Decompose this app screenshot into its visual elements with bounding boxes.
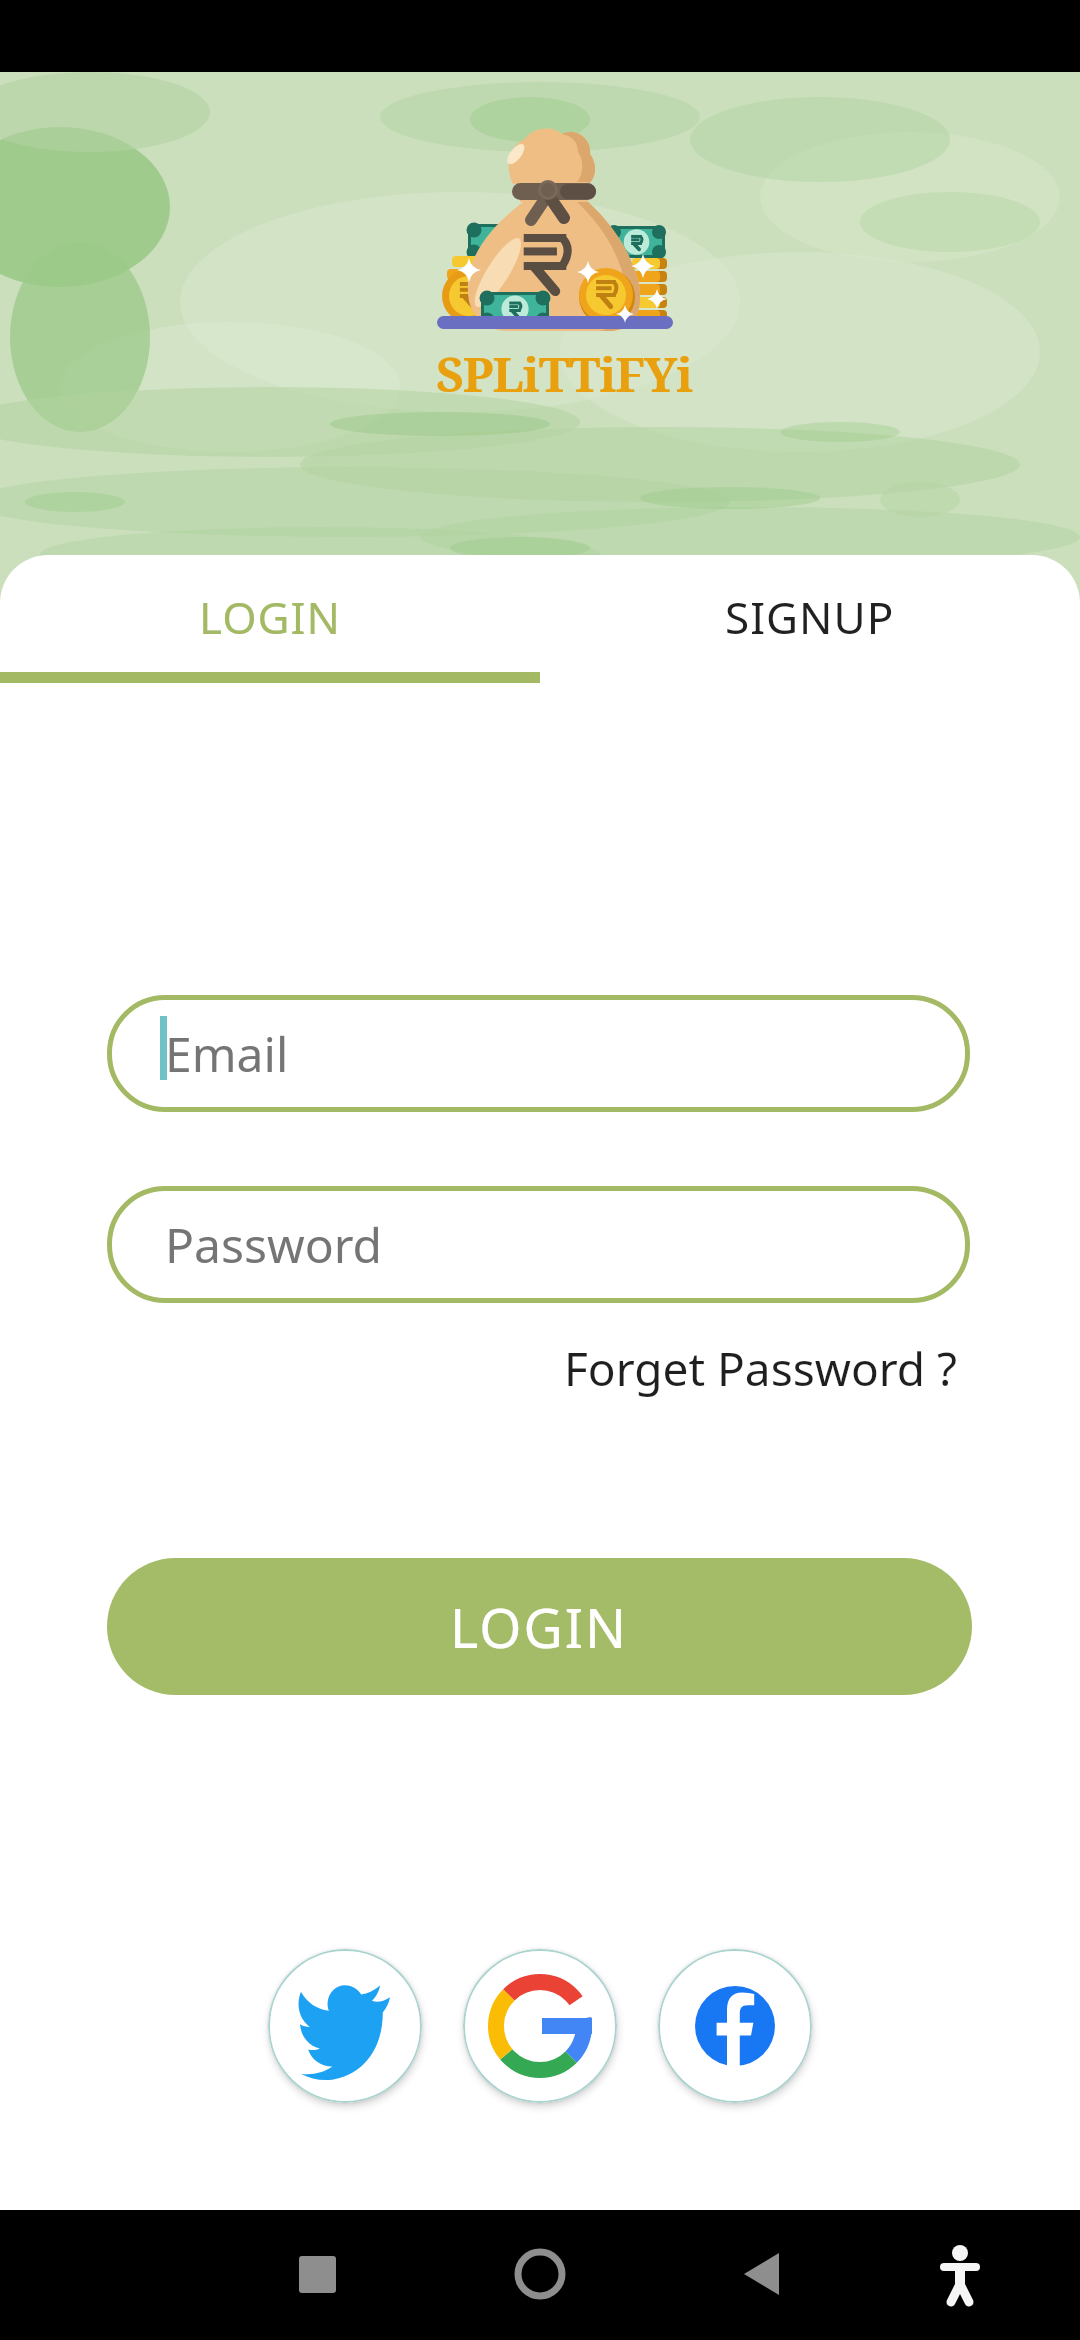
staticText: Forget Password ? (564, 1337, 958, 1400)
staticText: LOGIN (450, 1590, 629, 1664)
button[interactable] (463, 1949, 617, 2103)
button[interactable]: Forget Password ? (420, 1336, 958, 1400)
button[interactable]: Password (107, 1186, 970, 1303)
staticText: Password (165, 1212, 383, 1277)
button[interactable]: Email (107, 995, 970, 1112)
staticText: SPLiTTiFYi (436, 341, 693, 406)
button[interactable] (658, 1949, 812, 2103)
button[interactable]: LOGIN (0, 567, 540, 667)
button[interactable]: SIGNUP (540, 567, 1080, 667)
button[interactable]: LOGIN (107, 1558, 972, 1695)
staticText: LOGIN (199, 587, 341, 647)
button[interactable] (268, 1949, 422, 2103)
staticText: Email (165, 1021, 289, 1086)
staticText: SIGNUP (725, 587, 895, 647)
